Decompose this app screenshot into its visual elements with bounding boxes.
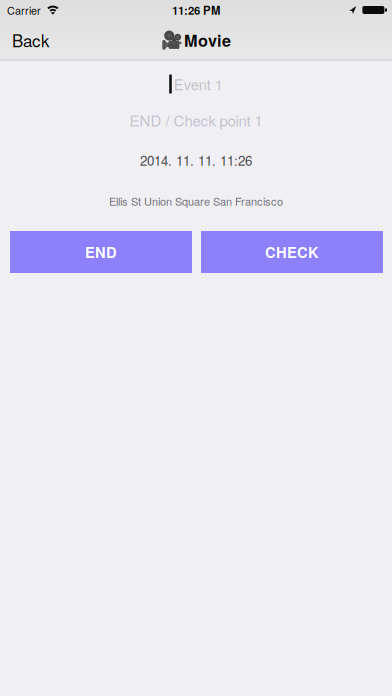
staticText: Carrier (7, 2, 41, 18)
button[interactable]: CHECK (201, 231, 383, 273)
staticText: Ellis St Union Square San Francisco (109, 193, 283, 209)
button[interactable]: END (10, 231, 192, 273)
staticText: Event 1 (174, 73, 223, 94)
staticText: END (85, 241, 117, 262)
staticText: 2014. 11. 11. 11:26 (140, 150, 252, 170)
staticText: END / Check point 1 (129, 109, 262, 131)
staticText: CHECK (265, 241, 319, 262)
button[interactable]: Back (0, 20, 64, 60)
staticText: 11:26 PM (172, 2, 220, 18)
staticText: Movie (184, 28, 231, 52)
staticText: 🎥 (161, 30, 183, 50)
staticText: Back (12, 28, 49, 52)
